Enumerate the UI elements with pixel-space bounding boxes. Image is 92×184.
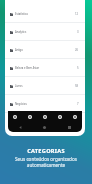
staticText: CATEGORIAS (0, 147, 92, 155)
button[interactable]: Back (8, 123, 32, 132)
button[interactable]: Tab (37, 111, 52, 123)
button[interactable]: Artigo (5, 41, 85, 59)
staticText: Beleza e Bem-Estar (15, 66, 40, 70)
staticText: Seus conteúdos organizados automaticamen… (0, 156, 92, 168)
staticText: 26 (75, 48, 79, 52)
staticText: Negócios (15, 102, 27, 106)
button[interactable]: Tab (22, 111, 37, 123)
staticText: 12 (75, 12, 79, 16)
button[interactable]: Tab (8, 111, 22, 123)
staticText: Livros (15, 84, 23, 88)
button[interactable]: Beleza e Bem-Estar (5, 59, 85, 77)
button[interactable]: Negócios (5, 95, 85, 113)
button[interactable]: Estatística (5, 5, 85, 23)
staticText: 5 (77, 66, 79, 70)
staticText: Artigo (15, 48, 23, 52)
button[interactable]: Recents (57, 123, 82, 132)
staticText: 7 (77, 102, 79, 106)
button[interactable]: Analytics (5, 23, 85, 41)
button[interactable]: Tab (52, 111, 67, 123)
staticText: 3 (77, 30, 79, 34)
staticText: Estatística (15, 12, 28, 16)
button[interactable]: Livros (5, 77, 85, 95)
button[interactable]: Tab (67, 111, 82, 123)
staticText: 58 (75, 84, 79, 88)
staticText: Analytics (15, 30, 27, 34)
button[interactable]: Home (32, 123, 57, 132)
